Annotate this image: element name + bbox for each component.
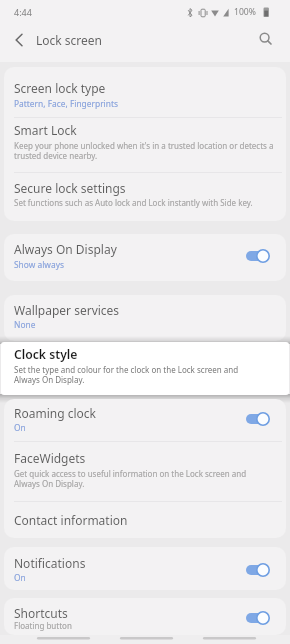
button[interactable] bbox=[244, 410, 272, 428]
button[interactable] bbox=[244, 561, 272, 579]
button[interactable] bbox=[4, 234, 286, 281]
staticText: Keep your phone unlocked when it's in a … bbox=[14, 140, 274, 151]
staticText: Notifications bbox=[14, 555, 86, 571]
staticText: Wallpaper services bbox=[14, 302, 120, 318]
staticText: Screen lock type bbox=[14, 80, 106, 96]
staticText: Clock style bbox=[14, 346, 78, 363]
button[interactable] bbox=[4, 547, 286, 590]
button[interactable] bbox=[244, 247, 272, 265]
button[interactable] bbox=[4, 501, 286, 538]
staticText: Pattern, Face, Fingerprints bbox=[14, 98, 118, 109]
staticText: None bbox=[14, 319, 36, 330]
button[interactable] bbox=[4, 172, 286, 221]
button[interactable] bbox=[4, 295, 286, 341]
staticText: Always On Display. bbox=[14, 374, 85, 385]
staticText: Floating button bbox=[14, 620, 72, 631]
staticText: FaceWidgets bbox=[14, 450, 86, 466]
staticText: Contact information bbox=[14, 512, 128, 528]
staticText: 4:44 bbox=[14, 6, 32, 18]
staticText: Secure lock settings bbox=[14, 180, 126, 196]
staticText: Set functions such as Auto lock and Lock… bbox=[14, 197, 253, 208]
staticText: On bbox=[14, 422, 26, 433]
button[interactable] bbox=[1, 342, 289, 395]
staticText: Lock screen bbox=[36, 32, 103, 48]
button[interactable] bbox=[4, 67, 286, 117]
staticText: Smart Lock bbox=[14, 122, 77, 138]
button[interactable] bbox=[4, 598, 286, 635]
staticText: trusted device nearby. bbox=[14, 150, 98, 161]
button[interactable] bbox=[4, 117, 286, 172]
button[interactable] bbox=[256, 29, 276, 49]
staticText: Shortcuts bbox=[14, 605, 68, 621]
staticText: Get quick access to useful information o… bbox=[14, 468, 247, 479]
staticText: Set the type and colour for the clock on… bbox=[14, 364, 239, 375]
staticText: 100% bbox=[234, 6, 256, 18]
button[interactable] bbox=[244, 609, 272, 627]
staticText: Always On Display bbox=[14, 241, 117, 257]
button[interactable] bbox=[4, 441, 286, 501]
staticText: Roaming clock bbox=[14, 405, 96, 421]
staticText: Show always bbox=[14, 259, 64, 270]
button[interactable] bbox=[10, 31, 28, 49]
button[interactable] bbox=[4, 399, 286, 441]
staticText: Always On Display. bbox=[14, 478, 85, 489]
staticText: On bbox=[14, 572, 26, 583]
